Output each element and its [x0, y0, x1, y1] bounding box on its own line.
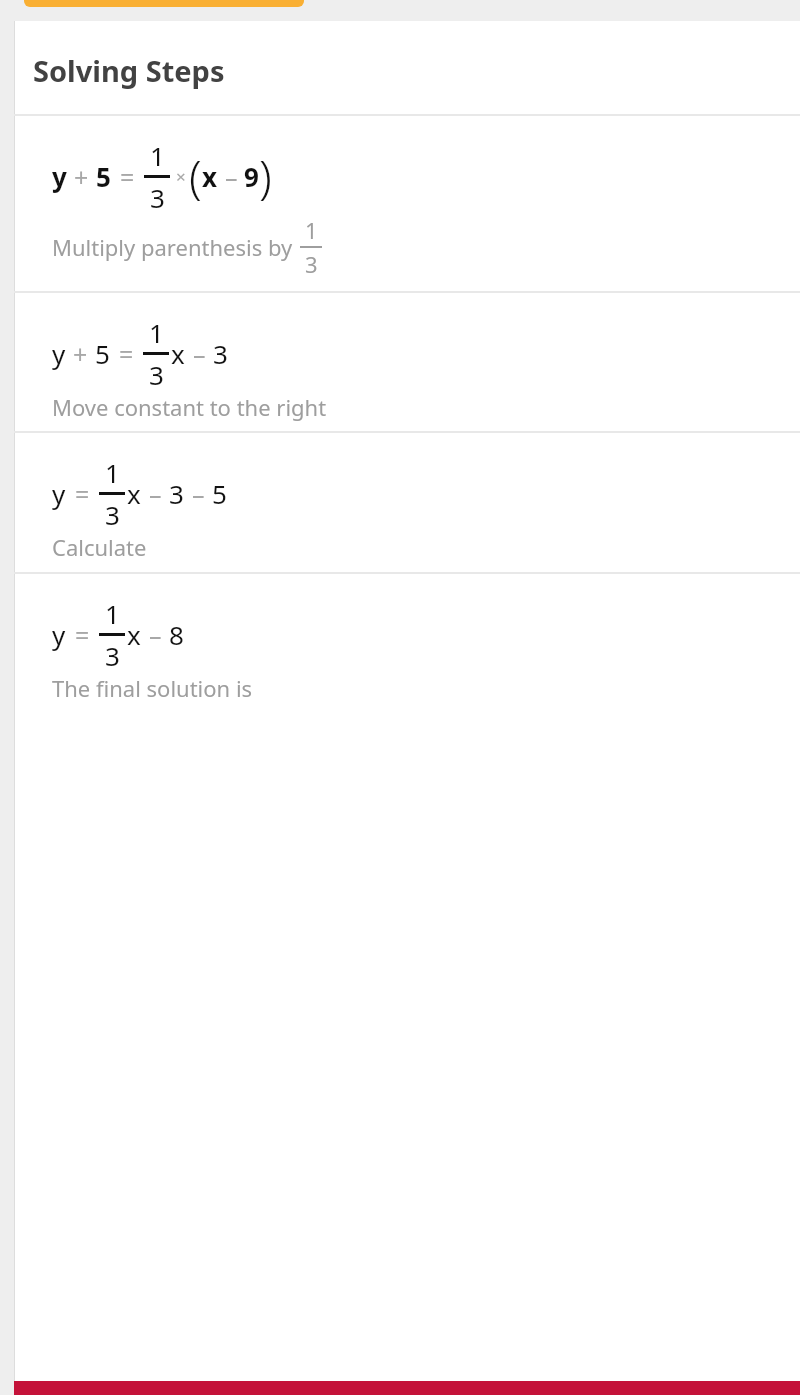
staticText: – [193, 337, 206, 371]
staticText: Multiply parenthesis by [52, 232, 293, 262]
staticText: 1 [305, 215, 318, 245]
staticText: 3 [213, 336, 228, 371]
staticText: 1 [150, 138, 165, 173]
staticText: 5 [95, 336, 110, 371]
staticText: x [127, 476, 141, 511]
staticText: – [149, 477, 162, 511]
staticText: – [225, 160, 238, 194]
button[interactable]: y [14, 574, 800, 712]
staticText: x [171, 336, 185, 371]
staticText: y [52, 159, 67, 194]
staticText: x [127, 617, 141, 652]
staticText: = [75, 618, 90, 652]
staticText: ) [259, 145, 272, 208]
staticText: 1 [105, 596, 120, 631]
button[interactable]: y [14, 293, 800, 431]
staticText: y [52, 336, 66, 371]
staticText: y [52, 617, 66, 652]
staticText: 3 [169, 476, 184, 511]
staticText: 3 [149, 357, 164, 392]
button[interactable] [24, 0, 304, 7]
staticText: 5 [212, 476, 227, 511]
staticText: = [75, 477, 90, 511]
staticText: Move constant to the right [52, 392, 327, 422]
staticText: × [176, 165, 186, 188]
staticText: 5 [96, 159, 111, 194]
staticText: + [73, 337, 88, 371]
staticText: 8 [169, 617, 184, 652]
button[interactable]: y [14, 116, 800, 291]
staticText: 1 [149, 315, 164, 350]
staticText: 3 [150, 180, 165, 215]
staticText: 3 [105, 497, 120, 532]
staticText: x [202, 159, 218, 194]
button[interactable]: y [14, 433, 800, 572]
staticText: = [120, 160, 135, 194]
staticText: 9 [244, 159, 259, 194]
staticText: – [149, 618, 162, 652]
staticText: Calculate [52, 532, 147, 562]
staticText: Solving Steps [33, 51, 225, 90]
staticText: 1 [105, 455, 120, 490]
staticText: The final solution is [52, 673, 253, 703]
staticText: 3 [105, 638, 120, 673]
staticText: y [52, 476, 66, 511]
staticText: – [192, 477, 205, 511]
staticText: 3 [305, 249, 318, 279]
staticText: ( [189, 145, 202, 208]
staticText: = [119, 337, 134, 371]
staticText: + [74, 160, 89, 194]
